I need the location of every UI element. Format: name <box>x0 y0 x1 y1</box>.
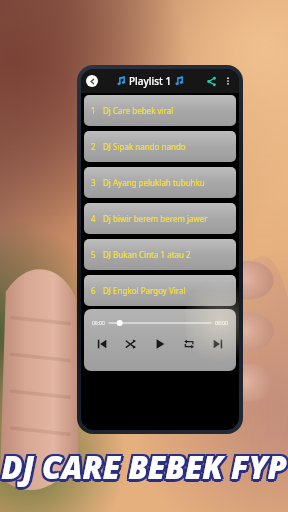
button[interactable]: Play <box>150 334 170 354</box>
staticText: Dj biwir berem berem jawer hayam <box>103 213 229 224</box>
button[interactable]: 3 <box>84 167 236 198</box>
staticText: DJ CARE BEBEK FYP <box>1 449 287 491</box>
button[interactable]: Previous <box>92 334 112 354</box>
button[interactable] <box>109 318 211 328</box>
button[interactable]: More options <box>222 75 234 87</box>
staticText: 3 <box>91 177 96 188</box>
staticText: 4 <box>91 213 96 224</box>
button[interactable]: 5 <box>84 239 236 270</box>
staticText: Playlist 1 <box>129 74 172 88</box>
button[interactable]: 1 <box>84 95 236 126</box>
staticText: DJ CARE BEBEK FYP <box>1 444 287 486</box>
staticText: DJ CARE BEBEK FYP <box>0 444 285 486</box>
button[interactable]: Share <box>203 73 219 89</box>
staticText: DJ CARE BEBEK FYP <box>1 446 287 488</box>
staticText: 6 <box>91 285 96 296</box>
button[interactable]: Next <box>208 334 228 354</box>
staticText: 5 <box>91 249 96 260</box>
staticText: 00:00 <box>92 320 105 327</box>
button[interactable]: 6 <box>84 275 236 306</box>
button[interactable]: 4 <box>84 203 236 234</box>
staticText: DJ CARE BEBEK FYP <box>4 446 288 488</box>
staticText: DJ CARE BEBEK FYP <box>0 448 285 490</box>
staticText: 2 <box>91 141 96 152</box>
staticText: DJ Engkol Pargoy Viral <box>103 285 186 296</box>
staticText: DJ Sipak nando nando <box>103 141 186 152</box>
staticText: DJ Bukan Cinta 1 atau 2 <box>103 249 191 260</box>
button[interactable]: Shuffle <box>121 334 141 354</box>
staticText: DJ CARE BEBEK FYP <box>3 448 288 490</box>
staticText: 00:00 <box>215 320 228 327</box>
staticText: DJ CARE BEBEK FYP <box>3 444 288 486</box>
staticText: Dj Ayang peluklah tubuhku <box>103 177 205 188</box>
button[interactable]: 2 <box>84 131 236 162</box>
staticText: DJ CARE BEBEK FYP <box>0 446 285 488</box>
staticText: Dj Care bebek viral <box>103 105 174 116</box>
staticText: 1 <box>91 105 96 116</box>
button[interactable]: Repeat <box>179 334 199 354</box>
button[interactable]: Back <box>86 75 98 87</box>
